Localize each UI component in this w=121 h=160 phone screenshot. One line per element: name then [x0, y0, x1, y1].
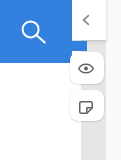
button[interactable]: Notes [70, 90, 104, 121]
other: Search [18, 16, 48, 46]
button[interactable]: Preview [70, 52, 104, 84]
button[interactable]: Back [76, 6, 96, 34]
